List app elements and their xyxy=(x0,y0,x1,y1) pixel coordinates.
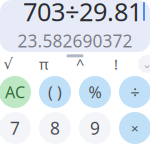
staticText: ⌄ xyxy=(142,57,150,71)
button[interactable]: 8 xyxy=(39,112,71,144)
staticText: 23.582690372 xyxy=(17,29,132,52)
staticText: 8 xyxy=(50,116,60,139)
staticText: π xyxy=(39,54,49,74)
staticText: × xyxy=(131,119,139,137)
staticText: AC xyxy=(5,81,25,103)
staticText: ÷ xyxy=(130,81,139,103)
staticText: ! xyxy=(114,54,118,74)
button[interactable]: ^ xyxy=(66,54,94,74)
staticText: √ xyxy=(3,56,12,72)
button[interactable]: 9 xyxy=(79,112,111,144)
button[interactable]: π xyxy=(30,54,58,74)
button[interactable]: AC xyxy=(0,76,31,108)
staticText: 9 xyxy=(90,116,100,139)
button[interactable]: 7 xyxy=(0,112,31,144)
button[interactable]: × xyxy=(119,112,150,144)
staticText: % xyxy=(88,81,101,103)
button[interactable]: √ xyxy=(0,54,22,74)
staticText: 703÷29.81 xyxy=(23,0,142,28)
staticText: ^ xyxy=(76,54,84,74)
button[interactable]: % xyxy=(79,76,111,108)
staticText: ( ) xyxy=(48,81,62,103)
button[interactable]: Hide functions xyxy=(138,55,150,73)
button[interactable]: ( ) xyxy=(39,76,71,108)
staticText: 7 xyxy=(10,116,20,139)
button[interactable]: ÷ xyxy=(119,76,150,108)
button[interactable]: ! xyxy=(102,54,130,74)
